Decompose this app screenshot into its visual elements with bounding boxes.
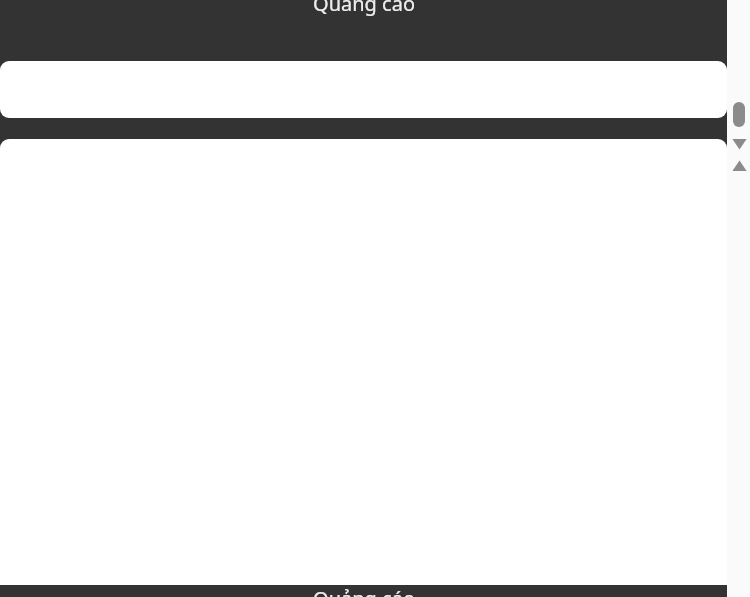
staticText: Quảng cáo xyxy=(313,585,415,597)
button[interactable] xyxy=(0,61,727,118)
button[interactable]: Scroll up xyxy=(733,161,746,171)
button[interactable]: Scroll position xyxy=(733,102,745,127)
button[interactable]: Scroll down xyxy=(733,139,746,149)
staticText: Quảng cáo xyxy=(313,0,415,17)
button[interactable]: Quảng cáo xyxy=(0,0,727,61)
button[interactable]: Quảng cáo xyxy=(0,585,727,597)
